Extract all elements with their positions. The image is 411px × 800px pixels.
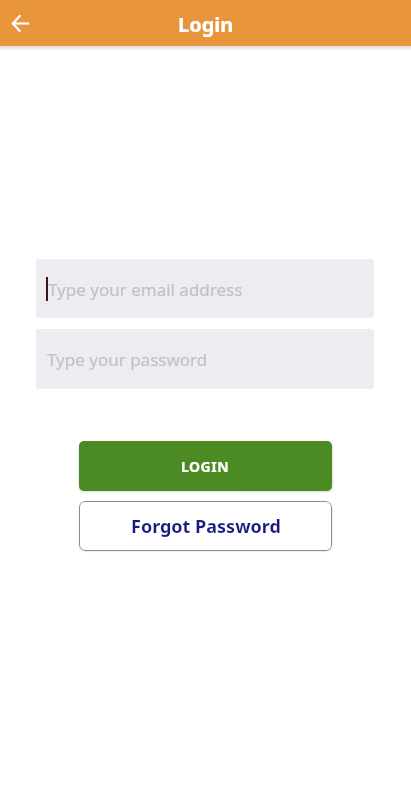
staticText: Login xyxy=(178,11,234,38)
button[interactable]: Type your password xyxy=(36,329,374,389)
button[interactable]: LOGIN xyxy=(79,441,332,491)
staticText: Type your email address xyxy=(48,278,243,301)
button[interactable]: Forgot Password xyxy=(79,501,332,551)
staticText: Forgot Password xyxy=(131,514,281,539)
button[interactable]: Type your email address xyxy=(36,259,374,318)
button[interactable] xyxy=(3,6,37,40)
staticText: Type your password xyxy=(47,348,208,371)
staticText: LOGIN xyxy=(181,457,230,476)
